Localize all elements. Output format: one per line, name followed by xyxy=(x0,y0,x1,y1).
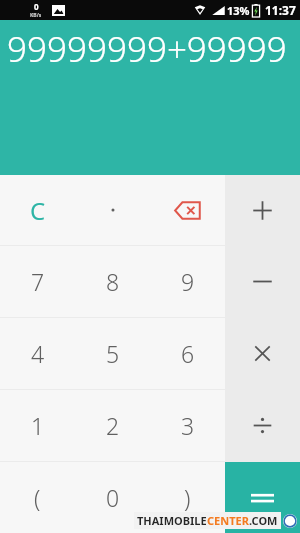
button[interactable]: C xyxy=(0,175,75,245)
staticText: 13% xyxy=(227,3,250,18)
staticText: THAIMOBILE xyxy=(137,513,207,528)
button[interactable]: 1 xyxy=(0,390,75,461)
staticText: 11:37 xyxy=(265,2,296,18)
staticText: 0 xyxy=(34,1,39,12)
staticText: KB/s xyxy=(30,12,42,19)
button[interactable] xyxy=(225,175,300,245)
staticText: 0 xyxy=(106,482,120,513)
button[interactable]: 6 xyxy=(150,318,225,389)
staticText: CENTER xyxy=(207,513,249,528)
button[interactable]: 2 xyxy=(75,390,150,461)
button[interactable] xyxy=(225,318,300,389)
button[interactable]: Backspace xyxy=(150,175,225,245)
button[interactable]: 9 xyxy=(150,246,225,317)
staticText: ( xyxy=(34,482,41,513)
button[interactable]: ( xyxy=(0,462,75,533)
staticText: 99999999+999999 xyxy=(7,25,300,73)
staticText: 5 xyxy=(106,338,120,369)
staticText: 8 xyxy=(106,266,120,297)
staticText: ) xyxy=(184,482,191,513)
staticText: 1 xyxy=(31,410,45,441)
button[interactable]: 0 xyxy=(75,462,150,533)
staticText: 9 xyxy=(181,266,195,297)
staticText: 7 xyxy=(31,266,45,297)
button[interactable]: ) xyxy=(150,462,225,533)
button[interactable]: 7 xyxy=(0,246,75,317)
staticText: 3 xyxy=(181,410,195,441)
staticText: 2 xyxy=(106,410,120,441)
button[interactable] xyxy=(75,175,150,245)
button[interactable]: 5 xyxy=(75,318,150,389)
staticText: 4 xyxy=(31,338,45,369)
staticText: C xyxy=(30,194,46,227)
button[interactable] xyxy=(225,246,300,317)
button[interactable]: 3 xyxy=(150,390,225,461)
button[interactable] xyxy=(225,390,300,461)
button[interactable]: 8 xyxy=(75,246,150,317)
staticText: .COM xyxy=(249,513,278,528)
button[interactable]: Equals xyxy=(225,462,300,533)
staticText: 6 xyxy=(181,338,195,369)
button[interactable]: 4 xyxy=(0,318,75,389)
